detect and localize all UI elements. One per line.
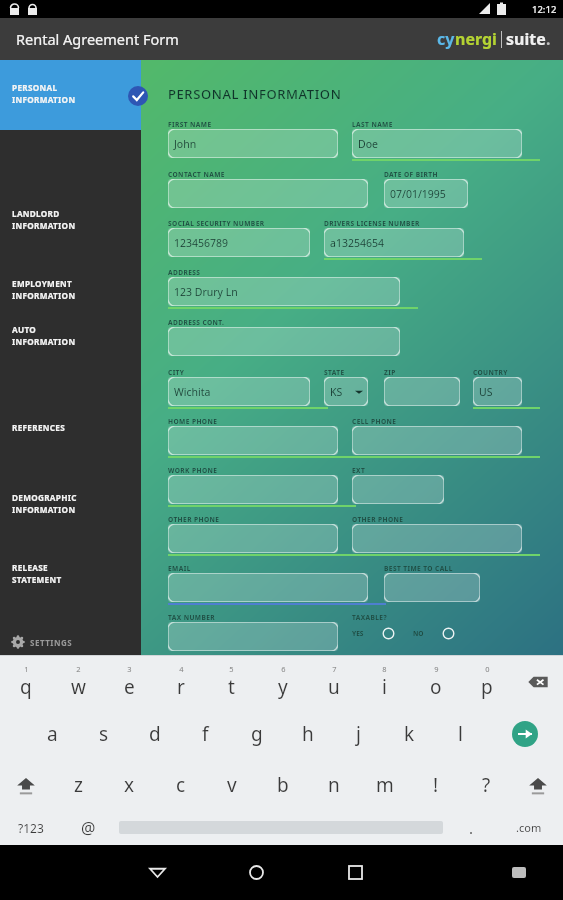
button[interactable]: PERSONAL (0, 82, 141, 112)
button[interactable]: m (359, 760, 410, 810)
button[interactable]: v (206, 760, 257, 810)
button[interactable] (352, 475, 444, 504)
button[interactable]: AUTO (0, 324, 141, 354)
button[interactable]: Select option (442, 627, 455, 640)
button[interactable] (384, 573, 480, 602)
button[interactable]: Shift (0, 760, 52, 810)
button[interactable]: Doe (352, 129, 522, 158)
staticText: 123456789 (174, 236, 229, 250)
button[interactable]: j (333, 708, 384, 760)
button[interactable]: @ (62, 810, 114, 845)
staticText: 3 (127, 664, 132, 674)
button[interactable] (352, 524, 522, 553)
staticText: 1 (24, 664, 29, 674)
button[interactable]: 8 (359, 656, 410, 708)
staticText: NO (413, 629, 424, 638)
button[interactable]: 5 (206, 656, 257, 708)
button[interactable]: Space (114, 810, 448, 845)
button[interactable]: .com (495, 810, 563, 845)
button[interactable]: John (168, 129, 338, 158)
button[interactable]: a (27, 708, 78, 760)
button[interactable]: z (52, 760, 104, 810)
staticText: CELL PHONE (352, 417, 397, 426)
button[interactable] (384, 377, 460, 406)
staticText: SOCIAL SECURITY NUMBER (168, 219, 265, 228)
staticText: Doe (358, 137, 378, 151)
staticText: CITY (168, 368, 185, 377)
button[interactable]: 9 (410, 656, 461, 708)
button[interactable]: Recent apps (306, 845, 405, 900)
button[interactable] (168, 475, 338, 504)
staticText: l (458, 721, 463, 747)
button[interactable]: Home (207, 845, 306, 900)
staticText: b (277, 772, 289, 798)
staticText: p (481, 674, 493, 700)
button[interactable]: h (282, 708, 333, 760)
button[interactable]: l (435, 708, 486, 760)
button[interactable]: 123456789 (168, 228, 310, 257)
button[interactable] (352, 426, 522, 455)
button[interactable]: KS (324, 377, 368, 406)
button[interactable] (168, 524, 338, 553)
staticText: US (479, 385, 493, 399)
button[interactable]: 2 (52, 656, 104, 708)
button[interactable]: ! (410, 760, 461, 810)
button[interactable]: s (78, 708, 129, 760)
button[interactable]: Back (108, 845, 207, 900)
staticText: 12:12 (532, 3, 557, 16)
button[interactable]: a13254654 (324, 228, 464, 257)
button[interactable]: 6 (257, 656, 308, 708)
button[interactable]: Wichita (168, 377, 310, 406)
button[interactable]: . (448, 810, 495, 845)
staticText: BEST TIME TO CALL (384, 564, 453, 573)
button[interactable]: REFERENCES (0, 422, 141, 438)
button[interactable]: 123 Drury Ln (168, 277, 400, 306)
button[interactable]: Enter (486, 708, 563, 760)
button[interactable]: US (473, 377, 522, 406)
button[interactable]: n (308, 760, 359, 810)
button[interactable]: Backspace (512, 656, 563, 708)
button[interactable]: Settings (0, 629, 141, 655)
button[interactable]: 0 (461, 656, 512, 708)
button[interactable]: DEMOGRAPHIC (0, 492, 141, 522)
button[interactable]: k (384, 708, 435, 760)
button[interactable]: 3 (104, 656, 155, 708)
button[interactable]: ?123 (0, 810, 62, 845)
button[interactable] (168, 573, 368, 602)
button[interactable]: Hide keyboard (474, 845, 563, 900)
staticText: a13254654 (330, 236, 384, 250)
staticText: .com (516, 820, 542, 835)
button[interactable]: 4 (155, 656, 206, 708)
staticText: 6 (281, 664, 286, 674)
button[interactable]: b (257, 760, 308, 810)
button[interactable]: RELEASE (0, 562, 141, 592)
staticText: OTHER PHONE (352, 515, 404, 524)
button[interactable]: x (104, 760, 155, 810)
button[interactable] (168, 622, 338, 651)
staticText: w (71, 674, 86, 700)
staticText: INFORMATION (12, 94, 76, 105)
staticText: OTHER PHONE (168, 515, 220, 524)
staticText: 8 (382, 664, 387, 674)
button[interactable] (168, 327, 400, 356)
staticText: PERSONAL (12, 82, 58, 93)
staticText: 5 (229, 664, 234, 674)
button[interactable]: 1 (0, 656, 52, 708)
button[interactable]: LANDLORD (0, 208, 141, 238)
button[interactable]: 07/01/1995 (384, 179, 468, 208)
button[interactable] (168, 179, 368, 208)
button[interactable]: f (180, 708, 231, 760)
button[interactable]: g (231, 708, 282, 760)
button[interactable]: ? (461, 760, 512, 810)
staticText: ADDRESS CONT. (168, 318, 225, 327)
button[interactable] (168, 426, 338, 455)
button[interactable]: Select option (382, 627, 395, 640)
button[interactable]: d (129, 708, 180, 760)
button[interactable]: 7 (308, 656, 359, 708)
staticText: r (177, 674, 185, 700)
button[interactable]: EMPLOYMENT (0, 278, 141, 308)
button[interactable]: Shift (512, 760, 563, 810)
staticText: TAX NUMBER (168, 613, 216, 622)
button[interactable]: c (155, 760, 206, 810)
button[interactable] (0, 60, 141, 130)
